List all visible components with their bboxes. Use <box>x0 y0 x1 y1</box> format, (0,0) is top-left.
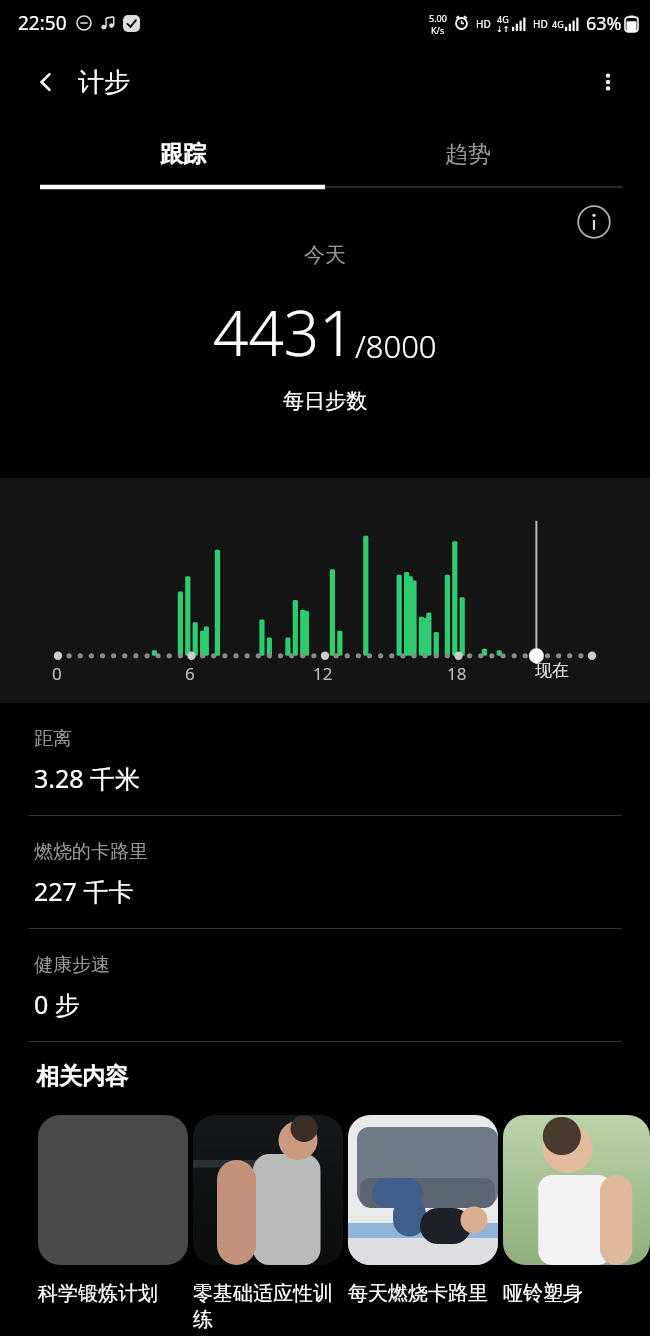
button[interactable]: Information <box>574 202 614 242</box>
staticText: 计步 <box>78 66 130 99</box>
staticText: 0 步 <box>34 987 80 1021</box>
staticText: 每天燃烧卡路里 <box>348 1281 488 1306</box>
staticText: 燃烧的卡路里 <box>34 840 148 864</box>
staticText: 22:50 <box>18 10 67 36</box>
staticText: 相关内容 <box>36 1062 128 1091</box>
staticText: HD <box>476 17 491 31</box>
staticText: 现在 <box>535 660 569 681</box>
staticText: 4G <box>552 18 564 30</box>
staticText: 4G <box>497 13 509 25</box>
staticText: 12 <box>313 662 333 685</box>
staticText: 0 <box>52 662 62 685</box>
staticText: 4431 <box>213 290 355 374</box>
button[interactable]: 燃烧的卡路里 <box>0 816 650 928</box>
button[interactable]: 跟踪 <box>40 118 325 190</box>
staticText: 5.00 <box>429 12 447 24</box>
button[interactable]: 每天燃烧卡路里 <box>348 1115 503 1306</box>
staticText: 趋势 <box>445 140 491 169</box>
staticText: 18 <box>447 662 467 685</box>
staticText: 63% <box>586 11 622 36</box>
staticText: 今天 <box>304 242 346 268</box>
button[interactable]: 趋势 <box>325 118 610 190</box>
staticText: 6 <box>185 662 195 685</box>
button[interactable]: 科学锻炼计划 <box>38 1115 193 1306</box>
staticText: /8000 <box>355 325 437 367</box>
staticText: 健康步速 <box>34 953 110 977</box>
staticText: HD <box>533 17 548 31</box>
staticText: 每日步数 <box>283 388 367 414</box>
button[interactable]: 健康步速 <box>0 929 650 1041</box>
staticText: 哑铃塑身 <box>503 1281 583 1306</box>
staticText: 227 千卡 <box>34 874 134 908</box>
button[interactable]: 哑铃塑身 <box>503 1115 650 1306</box>
button[interactable]: More options <box>586 60 630 104</box>
staticText: ↓↑ <box>496 25 510 34</box>
staticText: 零基础适应性训练 <box>193 1281 336 1332</box>
staticText: 3.28 千米 <box>34 761 141 795</box>
staticText: K/s <box>431 24 445 36</box>
staticText: 距离 <box>34 727 72 751</box>
staticText: 科学锻炼计划 <box>38 1281 158 1306</box>
button[interactable]: Back <box>26 62 66 102</box>
button[interactable]: 零基础适应性训练 <box>193 1115 348 1332</box>
staticText: 跟踪 <box>160 140 206 169</box>
button[interactable]: 距离 <box>0 703 650 815</box>
